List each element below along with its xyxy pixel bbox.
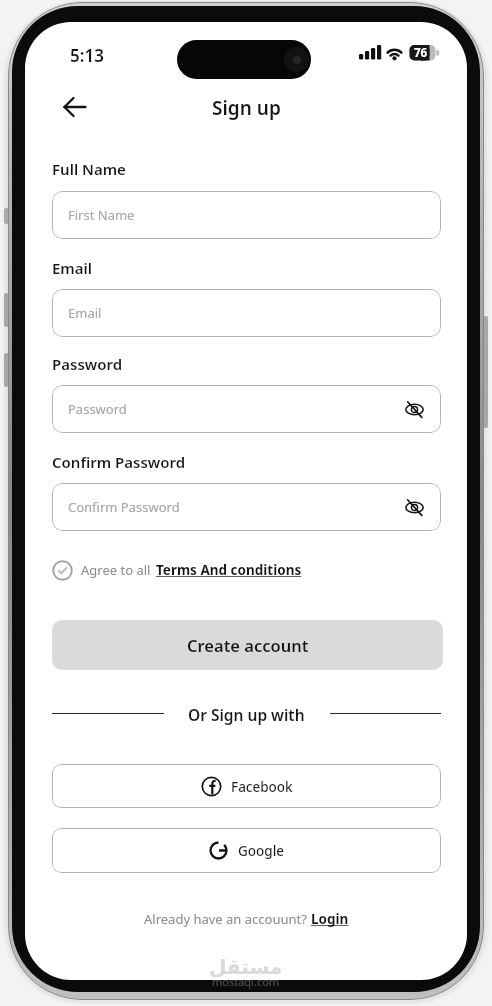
button[interactable]: Login	[311, 910, 349, 928]
button[interactable]: Create account	[52, 620, 443, 670]
staticText: mostaql.com	[212, 974, 280, 989]
staticText: First Name	[68, 206, 135, 224]
staticText: 76	[414, 45, 428, 61]
staticText: Sign up	[212, 95, 281, 121]
staticText: Or Sign up with	[188, 704, 305, 725]
button[interactable]: Email	[52, 289, 441, 337]
button[interactable]: First Name	[52, 191, 441, 239]
staticText: Create account	[187, 634, 309, 656]
staticText: Full Name	[52, 159, 126, 179]
staticText: 5:13	[70, 44, 104, 67]
staticText: Email	[68, 304, 102, 322]
staticText: Email	[52, 258, 93, 278]
staticText: Already have an accouunt?	[144, 910, 311, 928]
button[interactable]: Confirm Password	[52, 483, 441, 531]
button[interactable]	[62, 96, 88, 118]
button[interactable]: Google	[52, 828, 441, 873]
button[interactable]: Agree to all	[52, 558, 302, 582]
staticText: مستقل	[209, 955, 283, 978]
button[interactable]: Terms And conditions	[156, 561, 302, 579]
staticText: Password	[52, 354, 123, 374]
staticText: Confirm Password	[52, 452, 186, 472]
button[interactable]: Facebook	[52, 764, 441, 808]
staticText: Google	[238, 842, 285, 860]
staticText: Agree to all	[81, 561, 151, 579]
staticText: Password	[68, 400, 127, 418]
staticText: Confirm Password	[68, 498, 180, 516]
button[interactable]: Password	[52, 385, 441, 433]
staticText: Facebook	[231, 778, 293, 796]
